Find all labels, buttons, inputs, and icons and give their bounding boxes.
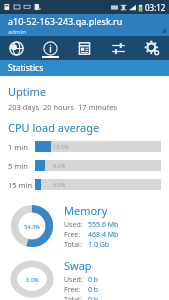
staticText: 1 min: [8, 142, 35, 152]
button[interactable]: Logs: [67, 36, 101, 60]
staticText: 203 days 20 hours 17 minutes: [8, 102, 118, 112]
staticText: 0.0%: [26, 276, 39, 283]
button[interactable]: 54.3%: [8, 202, 161, 250]
staticText: 555.6 Mb: [88, 220, 119, 230]
staticText: 5.0%: [53, 181, 66, 188]
button[interactable]: Tools: [101, 36, 135, 60]
staticText: Total:: [64, 240, 88, 250]
button[interactable]: Statistics: [33, 36, 67, 60]
staticText: 0 b: [88, 275, 99, 285]
staticText: 54.3%: [24, 223, 40, 230]
button[interactable]: 1 min: [8, 141, 161, 152]
staticText: admin: [8, 28, 26, 36]
button[interactable]: 5 min: [8, 160, 161, 171]
staticText: CPU load average: [8, 120, 100, 135]
button[interactable]: a10-52-163-243.qa.plesk.ru: [0, 14, 169, 36]
staticText: 5 min: [8, 161, 35, 171]
staticText: Free:: [64, 285, 88, 295]
staticText: 0 b: [88, 285, 99, 295]
staticText: Uptime: [8, 84, 47, 99]
staticText: Statistics: [8, 62, 44, 74]
staticText: 13.0%: [53, 143, 69, 150]
button[interactable]: 0.0%: [8, 258, 161, 300]
staticText: Used:: [64, 220, 88, 230]
staticText: 8.0%: [53, 162, 66, 169]
staticText: Free:: [64, 230, 88, 240]
button[interactable]: Settings: [135, 36, 169, 60]
staticText: 03:12: [145, 2, 166, 13]
staticText: Used:: [64, 275, 88, 285]
staticText: 468.4 Mb: [88, 230, 119, 240]
staticText: Swap: [64, 258, 92, 273]
staticText: 1.0 Gb: [88, 240, 110, 250]
button[interactable]: 15 min: [8, 179, 161, 190]
staticText: a10-52-163-243.qa.plesk.ru: [8, 15, 123, 27]
staticText: 15 min: [8, 180, 35, 190]
staticText: 0 b: [88, 295, 99, 300]
staticText: Total:: [64, 295, 88, 300]
staticText: Memory: [64, 203, 108, 218]
button[interactable]: Websites: [0, 36, 33, 60]
